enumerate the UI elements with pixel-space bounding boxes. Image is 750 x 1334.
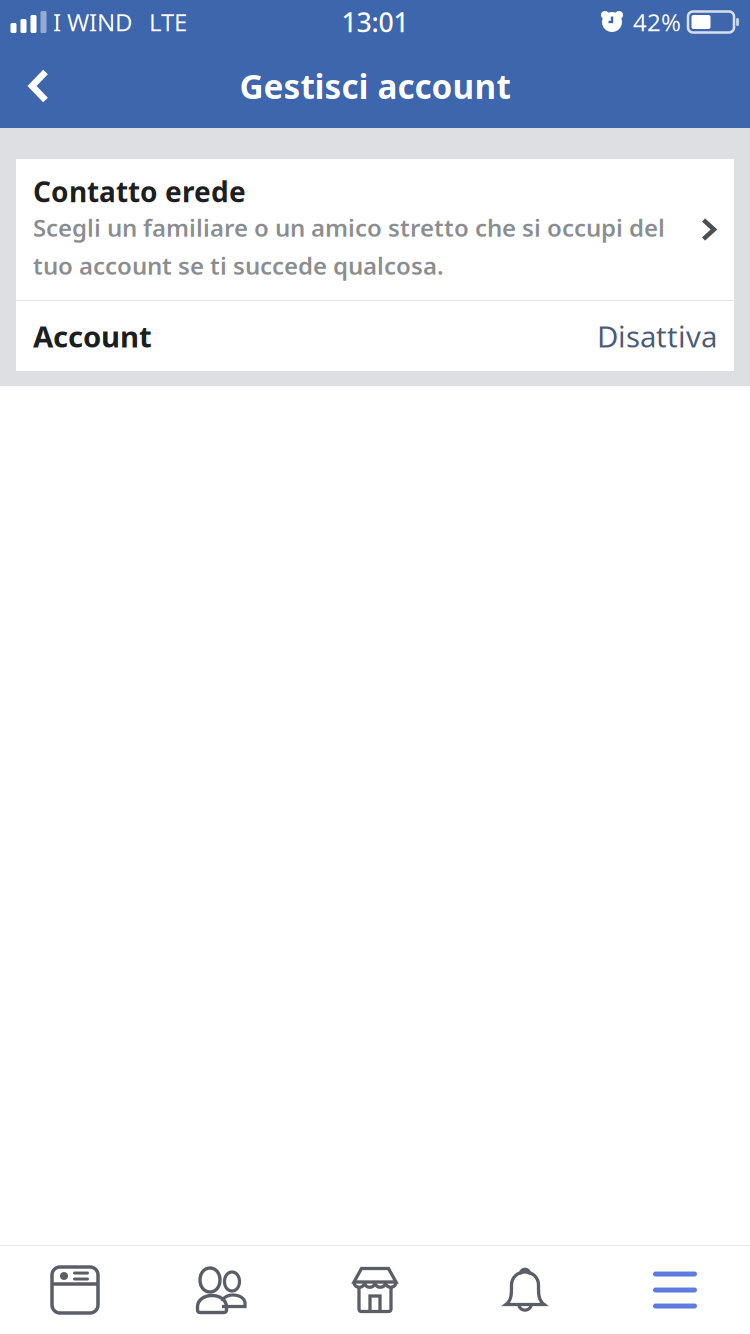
staticText: Scegli un familiare o un amico stretto c… (33, 212, 665, 243)
button[interactable]: Account (16, 301, 734, 371)
button[interactable]: Notifiche (450, 1246, 600, 1334)
staticText: 42% (633, 6, 681, 38)
staticText: Gestisci account (239, 64, 510, 108)
staticText: Account (33, 316, 152, 355)
staticText: 13:01 (341, 4, 408, 40)
button[interactable]: Amici (150, 1246, 300, 1334)
staticText: Disattiva (597, 316, 717, 355)
staticText: Contatto erede (33, 173, 246, 210)
staticText: LTE (149, 6, 187, 38)
button[interactable]: Marketplace (300, 1246, 450, 1334)
staticText: tuo account se ti succede qualcosa. (33, 250, 444, 281)
button[interactable]: Menu (600, 1246, 750, 1334)
button[interactable]: Indietro (0, 44, 78, 128)
button[interactable]: Notizie (0, 1246, 150, 1334)
staticText: I WIND (53, 6, 133, 38)
button[interactable]: Contatto erede (16, 159, 734, 300)
